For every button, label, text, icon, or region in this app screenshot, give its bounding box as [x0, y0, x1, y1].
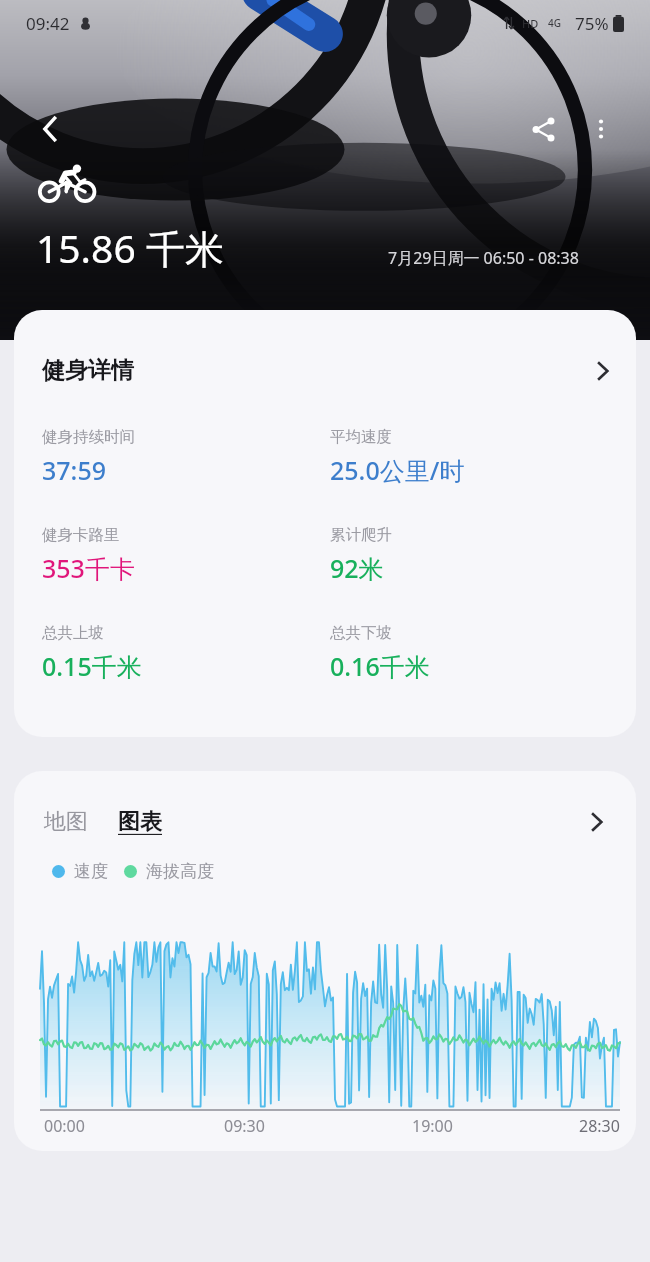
staticText: 37:59	[42, 453, 107, 487]
staticText: 健身持续时间	[42, 427, 135, 447]
button[interactable]: Share	[516, 102, 570, 156]
staticText: 00:00	[44, 1115, 85, 1137]
button[interactable]: More options	[574, 102, 628, 156]
staticText: 28:30	[579, 1115, 620, 1137]
staticText: 09:30	[224, 1115, 265, 1137]
staticText: 75%	[575, 12, 609, 35]
staticText: 09:42	[26, 12, 70, 35]
button[interactable]: Back	[22, 101, 78, 157]
staticText: 15.86 千米	[36, 221, 224, 274]
staticText: 健身详情	[42, 356, 134, 385]
staticText: 92米	[330, 551, 384, 585]
staticText: 0.15千米	[42, 649, 142, 683]
staticText: 平均速度	[330, 427, 392, 447]
staticText: 速度	[74, 861, 108, 882]
button[interactable]: Open chart details	[580, 805, 614, 839]
staticText: 353千卡	[42, 551, 135, 585]
staticText: 7月29日周一 06:50 - 08:38	[388, 247, 579, 269]
staticText: 海拔高度	[146, 861, 214, 882]
button[interactable]: 地图	[40, 806, 92, 838]
staticText: 总共下坡	[330, 623, 392, 643]
staticText: 0.16千米	[330, 649, 430, 683]
staticText: HD	[522, 16, 539, 31]
button[interactable]: 健身详情	[14, 310, 636, 401]
staticText: 19:00	[412, 1115, 453, 1137]
staticText: 4G	[548, 16, 561, 30]
button[interactable]: 图表	[114, 806, 166, 838]
staticText: 累计爬升	[330, 525, 392, 545]
staticText: 25.0公里/时	[330, 453, 465, 487]
staticText: 地图	[44, 808, 88, 836]
staticText: 健身卡路里	[42, 525, 120, 545]
staticText: 图表	[118, 808, 162, 836]
staticText: 总共上坡	[42, 623, 104, 643]
